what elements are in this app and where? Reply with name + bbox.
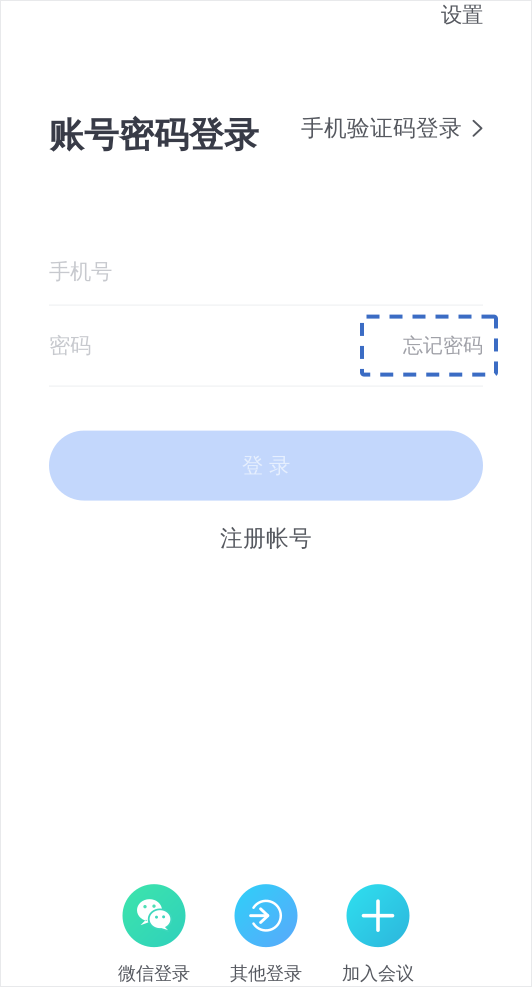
button[interactable]: 设置	[441, 2, 483, 28]
staticText: 手机号	[49, 258, 112, 285]
staticText: 注册帐号	[220, 525, 312, 552]
button[interactable]: 微信登录	[98, 884, 210, 985]
staticText: 登 录	[242, 452, 290, 479]
button[interactable]: 注册帐号	[220, 525, 312, 552]
staticText: 账号密码登录	[49, 114, 259, 157]
staticText: 加入会议	[342, 962, 414, 985]
button[interactable]: 其他登录	[210, 884, 322, 985]
button[interactable]: 忘记密码	[345, 315, 483, 377]
staticText: 其他登录	[230, 962, 302, 985]
button[interactable]: 手机验证码登录	[301, 121, 483, 149]
staticText: 密码	[49, 332, 91, 359]
button[interactable]: 登 录	[49, 431, 483, 501]
staticText: 忘记密码	[403, 333, 483, 358]
staticText: 手机验证码登录	[301, 114, 462, 142]
staticText: 设置	[441, 2, 483, 28]
button[interactable]: 加入会议	[322, 884, 434, 985]
staticText: 微信登录	[118, 962, 190, 985]
